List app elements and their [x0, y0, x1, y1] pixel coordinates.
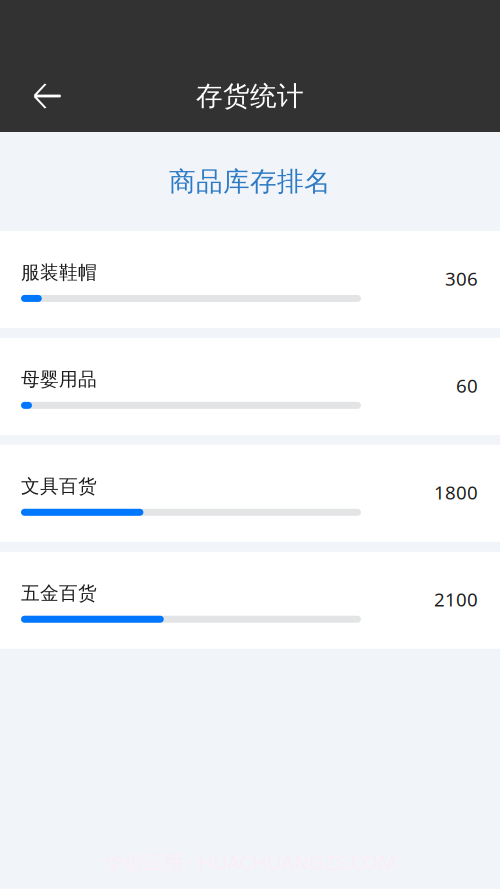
staticText: 服装鞋帽	[21, 261, 97, 284]
button[interactable]: Back	[0, 66, 77, 126]
staticText: 华创应用 · HUACHUANGZS.COM	[103, 848, 396, 875]
staticText: 2100	[434, 587, 478, 612]
button[interactable]: 文具百货	[0, 445, 500, 542]
staticText: 306	[445, 266, 478, 291]
staticText: 1800	[434, 480, 478, 505]
staticText: 存货统计	[196, 80, 304, 112]
staticText: 文具百货	[21, 475, 97, 498]
button[interactable]: 服装鞋帽	[0, 231, 500, 328]
staticText: 60	[456, 373, 478, 398]
staticText: 母婴用品	[21, 368, 97, 391]
staticText: 商品库存排名	[169, 165, 331, 198]
button[interactable]: 母婴用品	[0, 338, 500, 435]
staticText: 五金百货	[21, 582, 97, 605]
button[interactable]: 五金百货	[0, 552, 500, 649]
